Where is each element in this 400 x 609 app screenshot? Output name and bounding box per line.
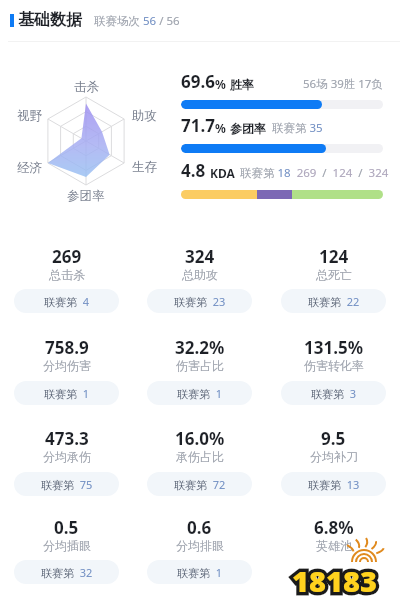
button[interactable]: 联赛第 23 [147, 289, 252, 313]
staticText: 分均排眼 [176, 538, 224, 553]
staticText: 胜率 [230, 77, 254, 92]
staticText: 联赛第 13 [308, 477, 360, 492]
staticText: 6.8% [314, 516, 354, 539]
staticText: 总死亡 [316, 267, 352, 282]
staticText: 联赛第 75 [41, 477, 93, 492]
staticText: KDA [210, 165, 235, 181]
staticText: 131.5% [304, 336, 364, 359]
button[interactable]: 联赛第 32 [14, 560, 119, 584]
staticText: 参团率 [230, 121, 266, 136]
staticText: 承伤占比 [176, 449, 224, 464]
staticText: 18183 [292, 561, 377, 600]
staticText: 伤害转化率 [304, 358, 364, 373]
staticText: 分均承伤 [43, 449, 91, 464]
staticText: 伤害占比 [176, 358, 224, 373]
staticText: 联赛第 3 [311, 386, 357, 401]
staticText: 联赛第 1 [177, 386, 223, 401]
staticText: 32.2% [175, 336, 225, 359]
staticText: 联赛第 23 [174, 294, 226, 309]
staticText: 助攻 [132, 108, 157, 124]
staticText: % [215, 76, 226, 92]
staticText: 联赛第 22 [308, 294, 360, 309]
staticText: 联赛第 4 [44, 294, 90, 309]
staticText: 生存 [132, 159, 157, 175]
staticText: 71.7 [181, 114, 215, 137]
staticText: 击杀 [74, 79, 99, 95]
button[interactable]: 基础数据 [0, 0, 400, 42]
button[interactable]: 联赛第 1 [147, 381, 252, 405]
staticText: 联赛第 1 [177, 565, 223, 580]
staticText: 473.3 [45, 427, 89, 450]
staticText: 69.6 [181, 70, 215, 93]
staticText: 9.5 [321, 427, 346, 450]
button[interactable]: 联赛第 4 [14, 289, 119, 313]
staticText: 联赛第 18 269 / 124 / 324 [240, 165, 389, 181]
staticText: % [215, 120, 226, 136]
staticText: 视野 [17, 108, 42, 124]
staticText: 0.6 [187, 516, 212, 539]
staticText: 联赛场次 56 / 56 [94, 13, 180, 29]
staticText: 联赛第 35 [272, 120, 323, 136]
staticText: 4.8 [181, 159, 206, 182]
staticText: 324 [185, 245, 215, 268]
button[interactable]: 联赛第 1 [14, 381, 119, 405]
staticText: 英雄池 [316, 538, 352, 553]
staticText: 经济 [17, 160, 42, 176]
staticText: 18183 [292, 561, 377, 600]
button[interactable]: 联赛第 3 [281, 381, 386, 405]
staticText: 总击杀 [49, 267, 85, 282]
staticText: 269 [52, 245, 82, 268]
staticText: 总助攻 [182, 267, 218, 282]
staticText: 124 [319, 245, 349, 268]
button[interactable]: 联赛第 1 [147, 560, 252, 584]
button[interactable]: 联赛第 13 [281, 472, 386, 496]
staticText: 参团率 [67, 188, 105, 204]
staticText: 56场 39胜 17负 [303, 76, 383, 92]
staticText: 基础数据 [18, 10, 82, 30]
button[interactable]: 联赛第 72 [147, 472, 252, 496]
staticText: 16.0% [175, 427, 225, 450]
staticText: 联赛第 32 [41, 565, 93, 580]
staticText: 联赛第 1 [44, 386, 90, 401]
staticText: 758.9 [45, 336, 89, 359]
staticText: 0.5 [54, 516, 79, 539]
button[interactable]: 联赛第 75 [14, 472, 119, 496]
staticText: 分均插眼 [43, 538, 91, 553]
button[interactable]: 联赛第 22 [281, 289, 386, 313]
staticText: 联赛第 72 [174, 477, 226, 492]
staticText: 分均伤害 [43, 358, 91, 373]
staticText: 分均补刀 [310, 449, 358, 464]
